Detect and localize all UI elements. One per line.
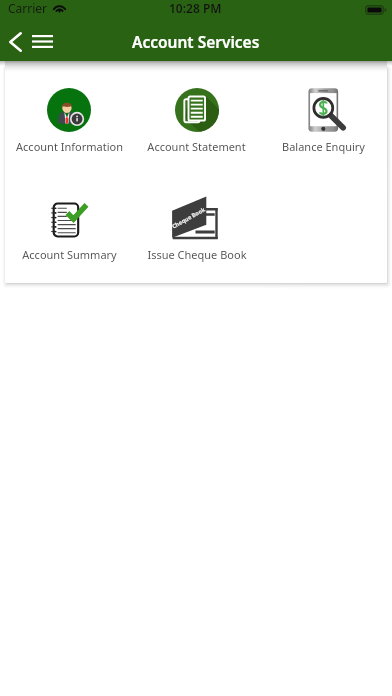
staticText: Account Summary (22, 247, 117, 262)
button[interactable]: Account Information (5, 87, 133, 154)
staticText: Balance Enquiry (282, 139, 365, 154)
button[interactable]: Account Statement (133, 87, 260, 154)
staticText: Account Services (132, 31, 260, 52)
button[interactable]: Issue Cheque Book (133, 195, 260, 262)
button[interactable]: Account Summary (5, 195, 133, 262)
staticText: Account Statement (147, 139, 246, 154)
staticText: Issue Cheque Book (147, 247, 247, 262)
staticText: Account Information (16, 139, 123, 154)
staticText: Carrier (8, 0, 48, 16)
button[interactable]: Back (2, 29, 28, 55)
staticText: 10:28 PM (169, 0, 222, 16)
button[interactable]: Menu (26, 25, 59, 58)
button[interactable]: Balance Enquiry (260, 87, 387, 154)
